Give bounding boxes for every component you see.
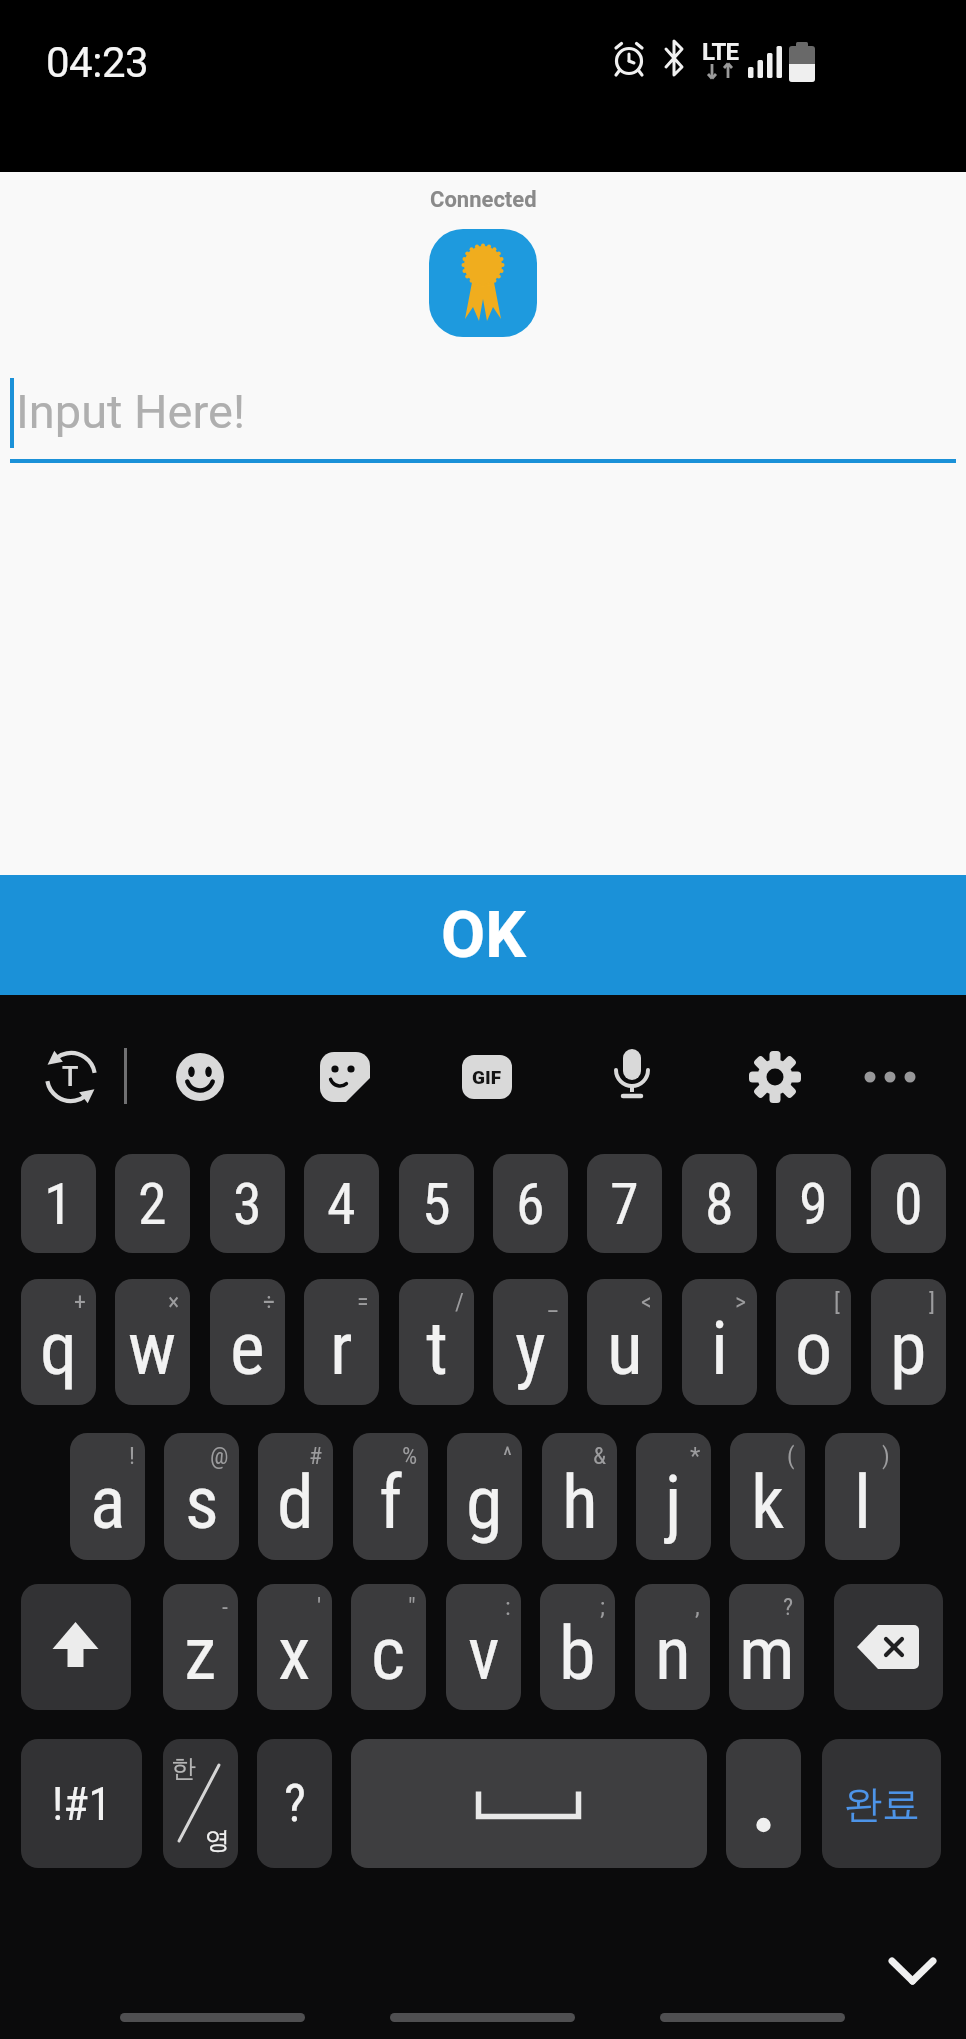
- staticText: 영: [205, 1825, 230, 1856]
- button[interactable]: 5: [399, 1154, 474, 1253]
- staticText: [: [834, 1288, 841, 1316]
- staticText: :: [505, 1593, 511, 1621]
- staticText: T: [62, 1061, 79, 1093]
- button[interactable]: t: [399, 1279, 474, 1405]
- staticText: f: [379, 1459, 403, 1546]
- button[interactable]: i: [682, 1279, 757, 1405]
- button[interactable]: k: [730, 1433, 805, 1560]
- button[interactable]: 8: [682, 1154, 757, 1253]
- staticText: ,: [695, 1593, 700, 1621]
- button[interactable]: [852, 1065, 928, 1089]
- button[interactable]: j: [636, 1433, 711, 1560]
- button[interactable]: f: [353, 1433, 428, 1560]
- button[interactable]: OK: [0, 875, 966, 995]
- staticText: x: [278, 1610, 311, 1697]
- button[interactable]: 7: [587, 1154, 662, 1253]
- button[interactable]: !#1: [21, 1739, 142, 1868]
- staticText: _: [548, 1288, 558, 1316]
- staticText: 1: [44, 1170, 73, 1238]
- staticText: %: [402, 1442, 418, 1470]
- button[interactable]: [880, 1951, 944, 1995]
- staticText: !#1: [52, 1777, 112, 1831]
- button[interactable]: [21, 1584, 131, 1710]
- button[interactable]: d: [258, 1433, 333, 1560]
- button[interactable]: [176, 1053, 224, 1101]
- staticText: e: [230, 1305, 265, 1392]
- staticText: &: [593, 1442, 607, 1470]
- button[interactable]: x: [257, 1584, 332, 1710]
- staticText: u: [607, 1305, 643, 1392]
- button[interactable]: 9: [776, 1154, 851, 1253]
- button[interactable]: T: [39, 1045, 103, 1109]
- button[interactable]: [606, 1047, 658, 1107]
- staticText: ^: [503, 1442, 512, 1470]
- staticText: w: [128, 1305, 177, 1392]
- button[interactable]: [351, 1739, 707, 1868]
- button[interactable]: 0: [871, 1154, 946, 1253]
- button[interactable]: m: [729, 1584, 804, 1710]
- button[interactable]: 한: [163, 1739, 238, 1868]
- staticText: g: [466, 1459, 503, 1546]
- button[interactable]: e: [210, 1279, 285, 1405]
- staticText: 8: [705, 1170, 734, 1238]
- button[interactable]: o: [776, 1279, 851, 1405]
- button[interactable]: [746, 1048, 804, 1106]
- staticText: (: [787, 1442, 795, 1470]
- staticText: !: [129, 1442, 135, 1470]
- button[interactable]: a: [70, 1433, 145, 1560]
- staticText: 9: [799, 1170, 828, 1238]
- staticText: b: [559, 1610, 596, 1697]
- staticText: 04:23: [46, 38, 149, 87]
- button[interactable]: l: [825, 1433, 900, 1560]
- button[interactable]: [834, 1584, 943, 1710]
- button[interactable]: 완료: [822, 1739, 941, 1868]
- staticText: 0: [894, 1170, 923, 1238]
- staticText: s: [185, 1459, 219, 1546]
- button[interactable]: n: [635, 1584, 710, 1710]
- button[interactable]: 3: [210, 1154, 285, 1253]
- button[interactable]: 4: [304, 1154, 379, 1253]
- button[interactable]: 6: [493, 1154, 568, 1253]
- button[interactable]: 1: [21, 1154, 96, 1253]
- staticText: q: [40, 1305, 78, 1392]
- button[interactable]: y: [493, 1279, 568, 1405]
- staticText: 6: [516, 1170, 545, 1238]
- button[interactable]: v: [446, 1584, 521, 1710]
- staticText: ?: [783, 1593, 794, 1621]
- button[interactable]: [429, 229, 537, 337]
- staticText: -: [222, 1593, 228, 1621]
- staticText: i: [711, 1305, 728, 1392]
- staticText: ): [882, 1442, 890, 1470]
- staticText: ': [317, 1593, 322, 1621]
- button[interactable]: h: [542, 1433, 617, 1560]
- button[interactable]: g: [447, 1433, 522, 1560]
- staticText: *: [690, 1442, 701, 1470]
- staticText: Input Here!: [16, 384, 246, 439]
- staticText: r: [330, 1305, 353, 1392]
- staticText: o: [795, 1305, 833, 1392]
- button[interactable]: s: [164, 1433, 239, 1560]
- staticText: 4: [327, 1170, 356, 1238]
- button[interactable]: p: [871, 1279, 946, 1405]
- button[interactable]: w: [115, 1279, 190, 1405]
- button[interactable]: q: [21, 1279, 96, 1405]
- staticText: OK: [441, 898, 526, 973]
- staticText: m: [739, 1610, 795, 1697]
- button[interactable]: [726, 1739, 801, 1868]
- button[interactable]: u: [587, 1279, 662, 1405]
- staticText: 한: [171, 1753, 196, 1784]
- staticText: #: [309, 1442, 323, 1470]
- button[interactable]: GIF: [462, 1055, 512, 1099]
- button[interactable]: [320, 1052, 370, 1102]
- staticText: z: [184, 1610, 217, 1697]
- staticText: >: [735, 1288, 747, 1316]
- button[interactable]: c: [351, 1584, 426, 1710]
- button[interactable]: 2: [115, 1154, 190, 1253]
- staticText: l: [854, 1459, 871, 1546]
- staticText: k: [751, 1459, 785, 1546]
- button[interactable]: ?: [257, 1739, 332, 1868]
- button[interactable]: z: [163, 1584, 238, 1710]
- staticText: +: [74, 1288, 86, 1316]
- button[interactable]: b: [540, 1584, 615, 1710]
- button[interactable]: r: [304, 1279, 379, 1405]
